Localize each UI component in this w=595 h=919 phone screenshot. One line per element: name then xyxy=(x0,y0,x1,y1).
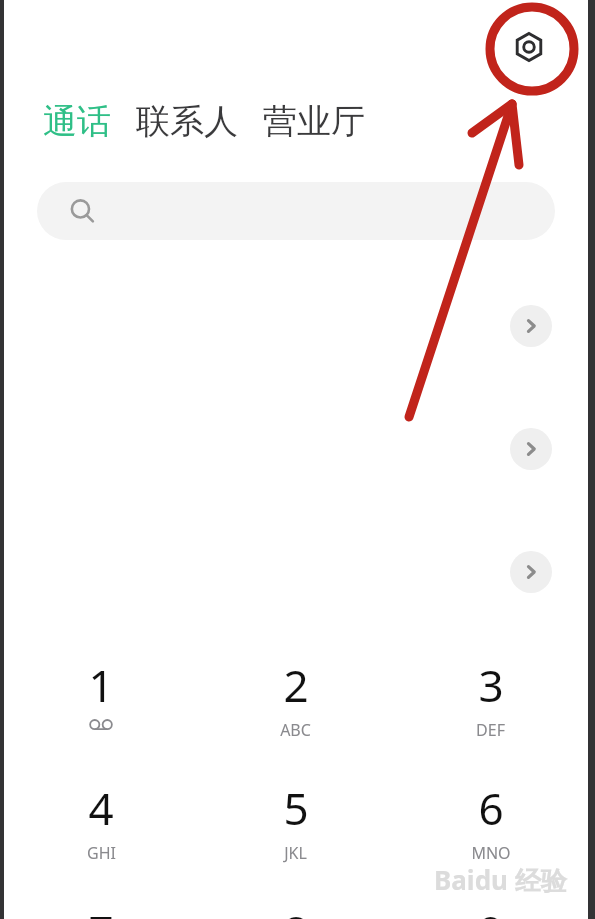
button[interactable]: Expand xyxy=(510,551,552,593)
button[interactable]: Expand xyxy=(510,428,552,470)
staticText: JKL xyxy=(284,842,307,864)
button[interactable]: 联系人 xyxy=(136,100,238,143)
staticText: 2 xyxy=(283,655,309,715)
button[interactable]: 营业厅 xyxy=(263,100,365,143)
button[interactable]: Settings xyxy=(500,18,558,76)
button[interactable]: 通话 xyxy=(43,100,111,143)
button[interactable]: 9 xyxy=(393,901,588,919)
staticText: 6 xyxy=(478,778,504,838)
button[interactable]: 6 xyxy=(393,778,588,864)
button[interactable]: 7 xyxy=(4,901,198,919)
staticText: 4 xyxy=(88,778,114,838)
staticText: GHI xyxy=(87,842,116,864)
button[interactable]: 1 xyxy=(4,655,198,733)
staticText: MNO xyxy=(471,842,511,864)
button[interactable]: Expand xyxy=(510,305,552,347)
button[interactable]: Search xyxy=(37,182,555,240)
button[interactable]: 5 xyxy=(198,778,393,864)
staticText: 9 xyxy=(478,901,504,919)
staticText: DEF xyxy=(476,719,505,741)
button[interactable]: 8 xyxy=(198,901,393,919)
staticText: ABC xyxy=(280,719,311,741)
staticText: 1 xyxy=(88,655,114,715)
staticText: 5 xyxy=(283,778,309,838)
staticText: 3 xyxy=(478,655,504,715)
staticText: Baidu 经验 xyxy=(434,862,567,898)
staticText: 通话 xyxy=(43,100,111,143)
button[interactable]: 4 xyxy=(4,778,198,864)
staticText: 7 xyxy=(88,901,114,919)
staticText: 联系人 xyxy=(136,100,238,143)
staticText: 8 xyxy=(283,901,309,919)
button[interactable]: 2 xyxy=(198,655,393,741)
staticText: 营业厅 xyxy=(263,100,365,143)
button[interactable]: 3 xyxy=(393,655,588,741)
